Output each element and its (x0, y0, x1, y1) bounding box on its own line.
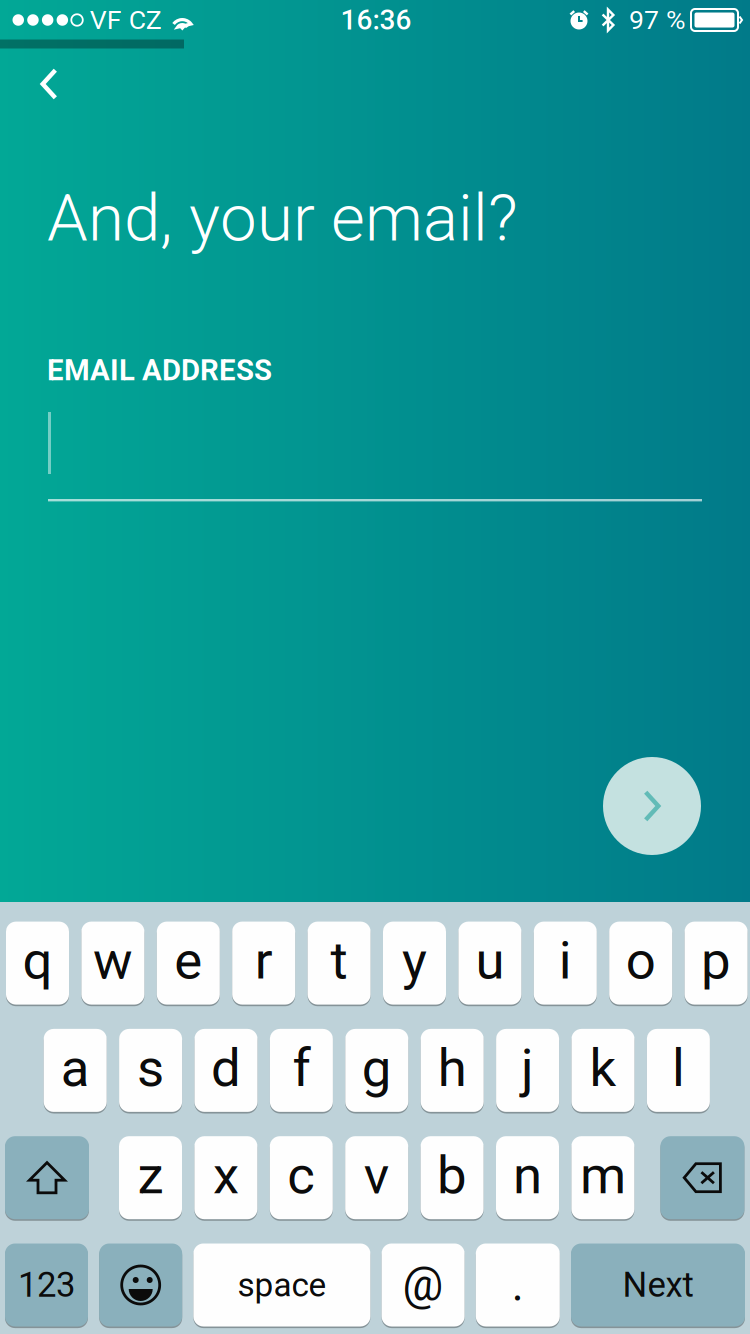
button[interactable]: Emoji keyboard (99, 1243, 182, 1326)
staticText: z (137, 1144, 163, 1206)
button[interactable]: Back (12, 49, 86, 119)
staticText: s (137, 1037, 164, 1099)
staticText: c (287, 1144, 315, 1206)
button[interactable]: z (119, 1136, 182, 1219)
button[interactable]: y (383, 922, 446, 1005)
button[interactable]: n (496, 1136, 559, 1219)
button[interactable]: f (270, 1029, 333, 1112)
staticText: u (475, 930, 504, 991)
button[interactable]: i (534, 922, 597, 1005)
staticText: 16:36 (340, 4, 411, 36)
button[interactable]: m (571, 1136, 634, 1219)
button[interactable]: Next (603, 757, 701, 855)
staticText: . (512, 1258, 524, 1311)
button[interactable]: Shift (5, 1136, 89, 1219)
staticText: e (174, 930, 202, 991)
button[interactable]: q (6, 922, 69, 1005)
button[interactable]: x (194, 1136, 257, 1219)
staticText: 123 (18, 1265, 75, 1305)
staticText: a (61, 1037, 90, 1099)
staticText: x (213, 1144, 239, 1206)
button[interactable]: a (44, 1029, 107, 1112)
staticText: l (672, 1037, 685, 1099)
staticText: Next (622, 1265, 693, 1305)
staticText: 97 % (629, 4, 686, 36)
button[interactable]: o (609, 922, 672, 1005)
staticText: And, your email? (47, 180, 518, 257)
staticText: b (437, 1144, 467, 1206)
staticText: g (362, 1037, 392, 1099)
button[interactable]: l (647, 1029, 710, 1112)
staticText: p (701, 930, 731, 991)
button[interactable]: k (571, 1029, 634, 1112)
button[interactable]: t (308, 922, 371, 1005)
button[interactable]: space (193, 1243, 370, 1326)
staticText: y (402, 930, 427, 991)
staticText: m (580, 1144, 626, 1206)
button[interactable]: 123 (5, 1243, 88, 1326)
staticText: q (22, 930, 52, 991)
staticText: r (255, 930, 273, 991)
button[interactable]: Delete (660, 1136, 744, 1219)
staticText: k (589, 1037, 616, 1099)
button[interactable]: d (194, 1029, 257, 1112)
button[interactable]: b (421, 1136, 484, 1219)
button[interactable]: @ (382, 1243, 465, 1326)
button[interactable]: c (270, 1136, 333, 1219)
staticText: VF CZ (90, 4, 162, 36)
staticText: v (364, 1144, 390, 1206)
button[interactable]: j (496, 1029, 559, 1112)
button[interactable]: h (421, 1029, 484, 1112)
button[interactable]: w (81, 922, 144, 1005)
staticText: space (237, 1265, 326, 1305)
button[interactable]: g (345, 1029, 408, 1112)
staticText: d (211, 1037, 241, 1099)
button[interactable]: s (119, 1029, 182, 1112)
staticText: @ (403, 1258, 444, 1311)
staticText: j (521, 1037, 534, 1099)
button[interactable]: Next (571, 1243, 745, 1326)
staticText: w (93, 930, 133, 991)
button[interactable]: u (458, 922, 521, 1005)
staticText: EMAIL ADDRESS (47, 353, 272, 387)
button[interactable]: e (157, 922, 220, 1005)
staticText: h (438, 1037, 467, 1099)
button[interactable]: . (476, 1243, 560, 1326)
staticText: t (331, 930, 348, 991)
staticText: o (626, 930, 656, 991)
button[interactable]: p (685, 922, 748, 1005)
staticText: f (292, 1037, 310, 1099)
staticText: i (559, 930, 572, 991)
staticText: n (513, 1144, 542, 1206)
button[interactable]: v (345, 1136, 408, 1219)
button[interactable]: r (232, 922, 295, 1005)
